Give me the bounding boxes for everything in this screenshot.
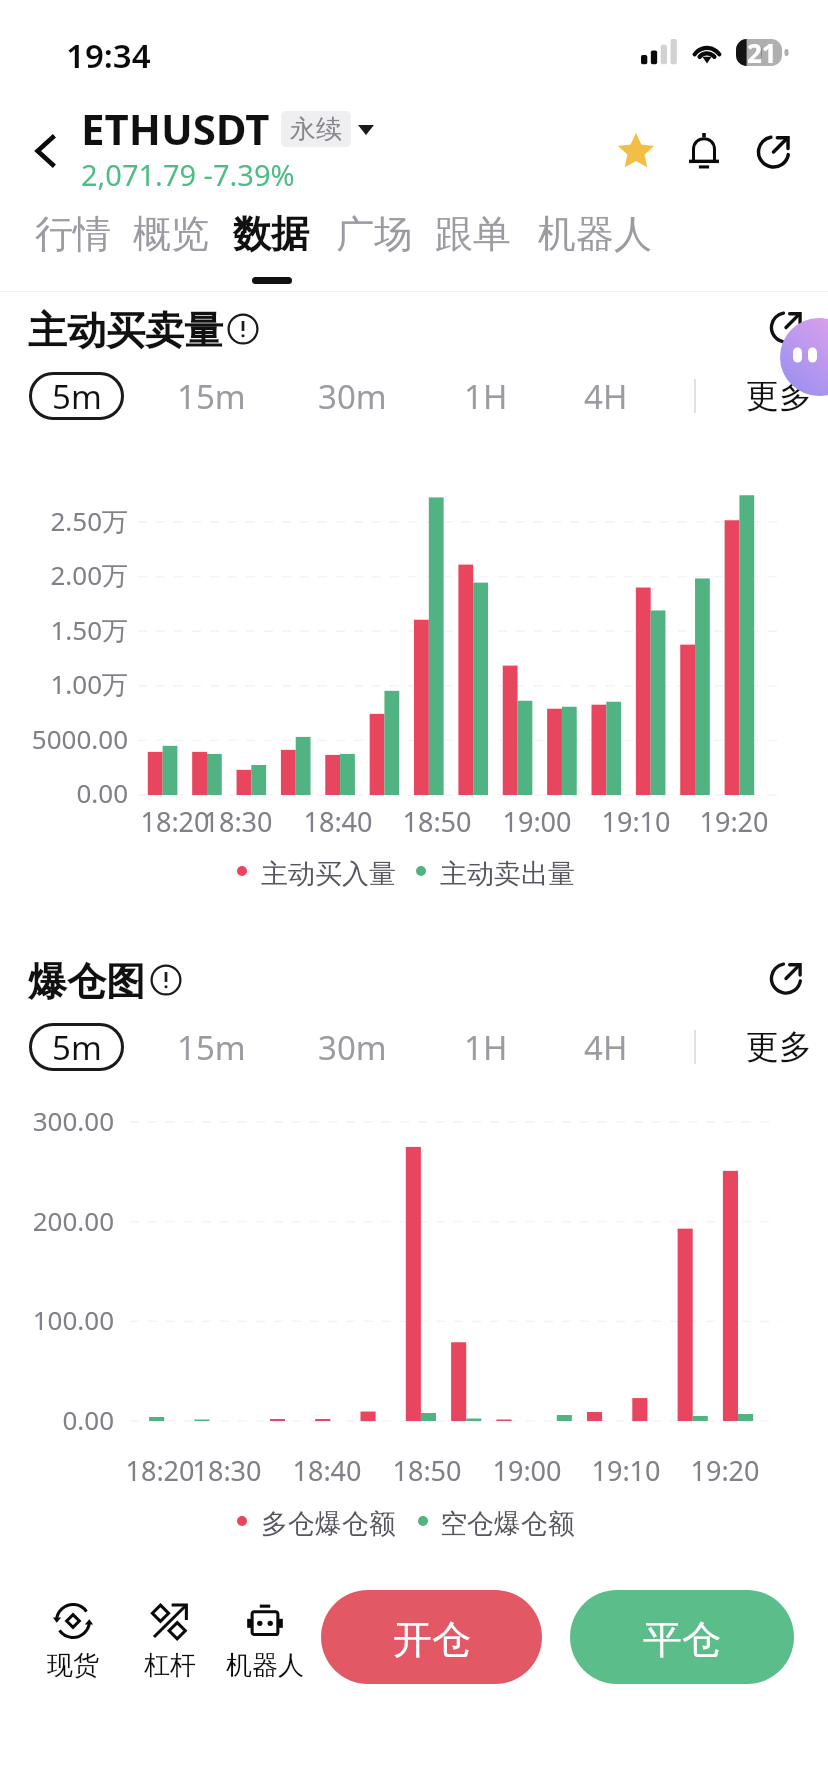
- staticText: 18:30: [167, 1452, 287, 1489]
- staticText: 18:20: [115, 803, 235, 840]
- staticText: 5m: [52, 374, 102, 419]
- staticText: 2,071.79 -7.39%: [81, 155, 295, 194]
- staticText: 更多: [746, 375, 812, 417]
- staticText: 19:00: [477, 803, 597, 840]
- button[interactable]: 5m: [29, 1023, 124, 1071]
- staticText: 数据: [233, 210, 309, 258]
- staticText: 5m: [52, 1025, 102, 1070]
- staticText: 主动买入量: [261, 857, 396, 891]
- staticText: 4H: [584, 1025, 628, 1070]
- button[interactable]: 行情: [25, 210, 121, 288]
- staticText: 19:20: [674, 803, 794, 840]
- staticText: 30m: [318, 374, 387, 419]
- button[interactable]: 4H: [556, 1023, 656, 1071]
- staticText: 主动买卖量: [28, 306, 223, 355]
- button[interactable]: Alerts: [673, 120, 735, 182]
- staticText: 概览: [133, 210, 209, 258]
- staticText: 2.00万: [0, 557, 128, 593]
- button[interactable]: 4H: [556, 372, 656, 420]
- staticText: 平仓: [643, 1615, 721, 1664]
- staticText: 19:00: [467, 1452, 587, 1489]
- staticText: 1.00万: [0, 666, 128, 702]
- staticText: 18:50: [377, 803, 497, 840]
- staticText: 30m: [318, 1025, 387, 1070]
- staticText: 5000.00: [0, 721, 128, 756]
- staticText: 多仓爆仓额: [261, 1507, 396, 1541]
- staticText: 现货: [47, 1649, 99, 1682]
- staticText: 机器人: [538, 210, 652, 258]
- staticText: 0.00: [0, 1402, 114, 1437]
- staticText: 主动卖出量: [440, 857, 575, 891]
- staticText: 开仓: [393, 1615, 471, 1664]
- staticText: ETHUSDT: [81, 100, 270, 157]
- staticText: 0.00: [0, 775, 128, 810]
- staticText: 15m: [177, 1025, 246, 1070]
- button[interactable]: 5m: [29, 372, 124, 420]
- button[interactable]: AI assistant: [780, 318, 828, 396]
- staticText: 杠杆: [144, 1649, 196, 1682]
- staticText: 爆仓图: [28, 957, 145, 1006]
- staticText: 100.00: [0, 1302, 114, 1337]
- staticText: 更多: [746, 1026, 812, 1068]
- button[interactable]: 概览: [122, 210, 220, 288]
- staticText: 18:50: [367, 1452, 487, 1489]
- button[interactable]: 30m: [302, 372, 402, 420]
- button[interactable]: 30m: [302, 1023, 402, 1071]
- button[interactable]: 15m: [161, 372, 261, 420]
- staticText: 15m: [177, 374, 246, 419]
- staticText: 永续: [290, 113, 342, 146]
- staticText: 21: [747, 35, 777, 70]
- button[interactable]: 更多: [743, 372, 828, 420]
- button[interactable]: 开仓: [321, 1590, 542, 1684]
- staticText: 18:40: [278, 803, 398, 840]
- button[interactable]: 现货: [18, 1603, 128, 1682]
- button[interactable]: Share: [742, 120, 804, 182]
- button[interactable]: 更多: [743, 1023, 828, 1071]
- button[interactable]: 杠杆: [115, 1603, 225, 1682]
- staticText: 300.00: [0, 1103, 114, 1138]
- button[interactable]: Favorite: [605, 120, 667, 182]
- staticText: 200.00: [0, 1203, 114, 1238]
- button[interactable]: 机器人: [210, 1603, 320, 1682]
- staticText: 机器人: [226, 1649, 304, 1682]
- staticText: 1H: [464, 374, 508, 419]
- button[interactable]: 数据: [220, 210, 321, 288]
- staticText: 18:40: [267, 1452, 387, 1489]
- staticText: 19:20: [665, 1452, 785, 1489]
- staticText: 2.50万: [0, 503, 128, 539]
- button[interactable]: 1H: [436, 1023, 536, 1071]
- staticText: 18:30: [178, 803, 298, 840]
- button[interactable]: Back: [16, 121, 76, 181]
- button[interactable]: 平仓: [570, 1590, 794, 1684]
- button[interactable]: 广场: [325, 210, 423, 288]
- button[interactable]: 1H: [436, 372, 536, 420]
- staticText: 4H: [584, 374, 628, 419]
- button[interactable]: Open full chart: [754, 946, 818, 1010]
- button[interactable]: 机器人: [526, 210, 664, 288]
- staticText: 1.50万: [0, 612, 128, 648]
- staticText: 广场: [336, 210, 412, 258]
- staticText: 18:20: [100, 1452, 220, 1489]
- staticText: 跟单: [435, 210, 511, 258]
- staticText: 19:34: [66, 33, 151, 78]
- button[interactable]: 跟单: [424, 210, 522, 288]
- staticText: 1H: [464, 1025, 508, 1070]
- button[interactable]: Open full chart: [754, 295, 818, 359]
- staticText: 19:10: [576, 803, 696, 840]
- button[interactable]: 15m: [161, 1023, 261, 1071]
- staticText: 空仓爆仓额: [440, 1507, 575, 1541]
- staticText: 19:10: [566, 1452, 686, 1489]
- staticText: 行情: [35, 210, 111, 258]
